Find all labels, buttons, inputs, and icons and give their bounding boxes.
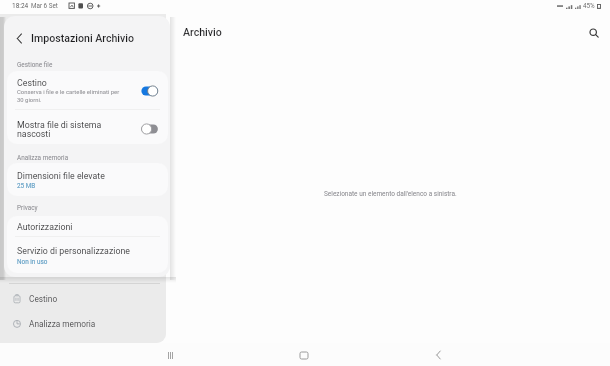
staticText: Cestino bbox=[29, 294, 58, 304]
staticText: 45% bbox=[583, 2, 595, 9]
staticText: Non in uso bbox=[17, 258, 48, 266]
staticText: Privacy bbox=[17, 204, 38, 212]
button[interactable]: Recenti bbox=[160, 345, 180, 365]
button[interactable] bbox=[7, 236, 168, 273]
button[interactable]: Cestino bbox=[0, 286, 166, 311]
staticText: 18:24 bbox=[12, 2, 29, 10]
button[interactable]: Indietro bbox=[13, 32, 25, 44]
staticText: Dimensioni file elevate bbox=[17, 171, 105, 181]
button[interactable]: Disattivo bbox=[141, 123, 159, 135]
button[interactable]: Dimensioni file elevate bbox=[7, 163, 168, 196]
staticText: Cestino bbox=[17, 78, 47, 88]
staticText: Mar 6 Set bbox=[31, 2, 58, 9]
staticText: Selezionate un elemento dall'elenco a si… bbox=[324, 190, 457, 198]
button[interactable]: Home bbox=[294, 345, 314, 365]
staticText: Servizio di personalizzazione bbox=[17, 246, 130, 256]
button[interactable]: Analizza memoria bbox=[0, 311, 166, 336]
staticText: Mostra file di sistema nascosti bbox=[17, 120, 102, 140]
staticText: Gestione file bbox=[17, 61, 53, 69]
staticText: 25 MB bbox=[17, 182, 36, 190]
button[interactable]: Indietro bbox=[428, 345, 448, 365]
button[interactable]: Cerca bbox=[584, 23, 604, 43]
staticText: Analizza memoria bbox=[17, 154, 69, 162]
button[interactable] bbox=[7, 71, 168, 109]
staticText: Conserva i file e le cartelle eliminati … bbox=[17, 89, 120, 103]
staticText: Archivio bbox=[183, 26, 222, 38]
staticText: Analizza memoria bbox=[29, 319, 96, 329]
button[interactable]: Attivo bbox=[141, 85, 159, 97]
button[interactable] bbox=[7, 216, 168, 236]
button[interactable] bbox=[7, 109, 168, 144]
staticText: Impostazioni Archivio bbox=[31, 32, 135, 44]
staticText: Autorizzazioni bbox=[17, 222, 73, 232]
